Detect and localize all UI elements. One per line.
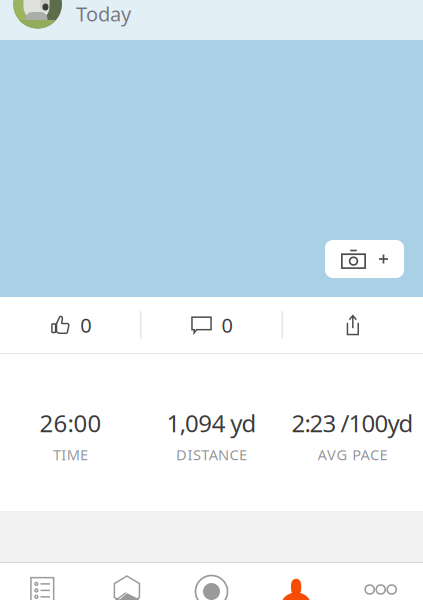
button[interactable]: Home [85,563,169,600]
button[interactable]: Add photo [325,240,404,278]
button[interactable]: More [338,563,423,600]
staticText: 1,094 yd [166,407,257,439]
button[interactable]: Like [0,297,140,353]
button[interactable]: Profile [254,563,338,600]
button[interactable]: Comment [141,297,282,353]
staticText: AVG PACE [318,445,387,464]
staticText: 0 [221,312,232,338]
button[interactable]: Share [283,297,423,353]
button[interactable]: Record [169,563,254,600]
staticText: Today [76,0,131,27]
staticText: DISTANCE [176,445,247,464]
staticText: 0 [80,312,91,338]
staticText: 26:00 [39,407,101,439]
button[interactable]: Workouts [0,563,85,600]
staticText: TIME [53,445,88,464]
staticText: 2:23 /100yd [291,407,413,439]
